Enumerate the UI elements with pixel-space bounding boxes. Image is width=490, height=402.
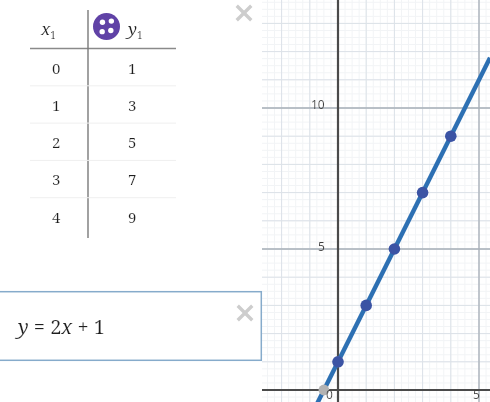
staticText: y = 2x + 1 xyxy=(18,313,105,340)
staticText: x1 xyxy=(41,17,56,42)
staticText: 7 xyxy=(128,169,137,189)
staticText: 10 xyxy=(311,96,325,112)
staticText: 4 xyxy=(52,207,61,227)
button[interactable]: Delete table xyxy=(233,2,255,24)
staticText: 5 xyxy=(318,238,325,254)
button[interactable]: y = 2x + 1 xyxy=(0,291,262,361)
button[interactable]: Point style xyxy=(93,13,120,40)
staticText: 1 xyxy=(128,58,137,78)
staticText: 3 xyxy=(52,169,61,189)
button[interactable]: Delete expression xyxy=(234,302,256,324)
staticText: 2 xyxy=(52,132,61,152)
staticText: y1 xyxy=(128,17,143,42)
staticText: 0 xyxy=(326,386,333,402)
staticText: 5 xyxy=(128,132,137,152)
button[interactable]: x1 xyxy=(0,0,262,260)
staticText: 1 xyxy=(52,95,61,115)
staticText: 9 xyxy=(128,207,137,227)
staticText: 0 xyxy=(52,58,61,78)
staticText: 3 xyxy=(128,95,137,115)
staticText: 5 xyxy=(473,386,480,402)
